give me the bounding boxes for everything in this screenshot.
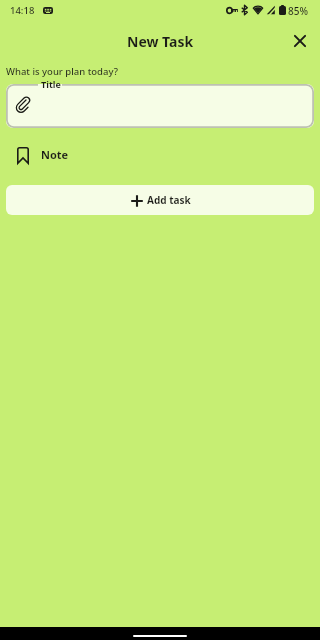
button[interactable]: Add task — [6, 185, 314, 215]
staticText: Note — [41, 147, 69, 162]
button[interactable] — [6, 84, 314, 128]
staticText: New Task — [127, 32, 194, 51]
staticText: 85% — [288, 4, 308, 18]
staticText: Title — [41, 78, 61, 89]
staticText: What is your plan today? — [6, 65, 118, 78]
button[interactable]: Close — [283, 24, 317, 58]
staticText: 14:18 — [10, 4, 35, 17]
button[interactable]: Note — [0, 143, 320, 167]
staticText: Add task — [147, 193, 191, 207]
